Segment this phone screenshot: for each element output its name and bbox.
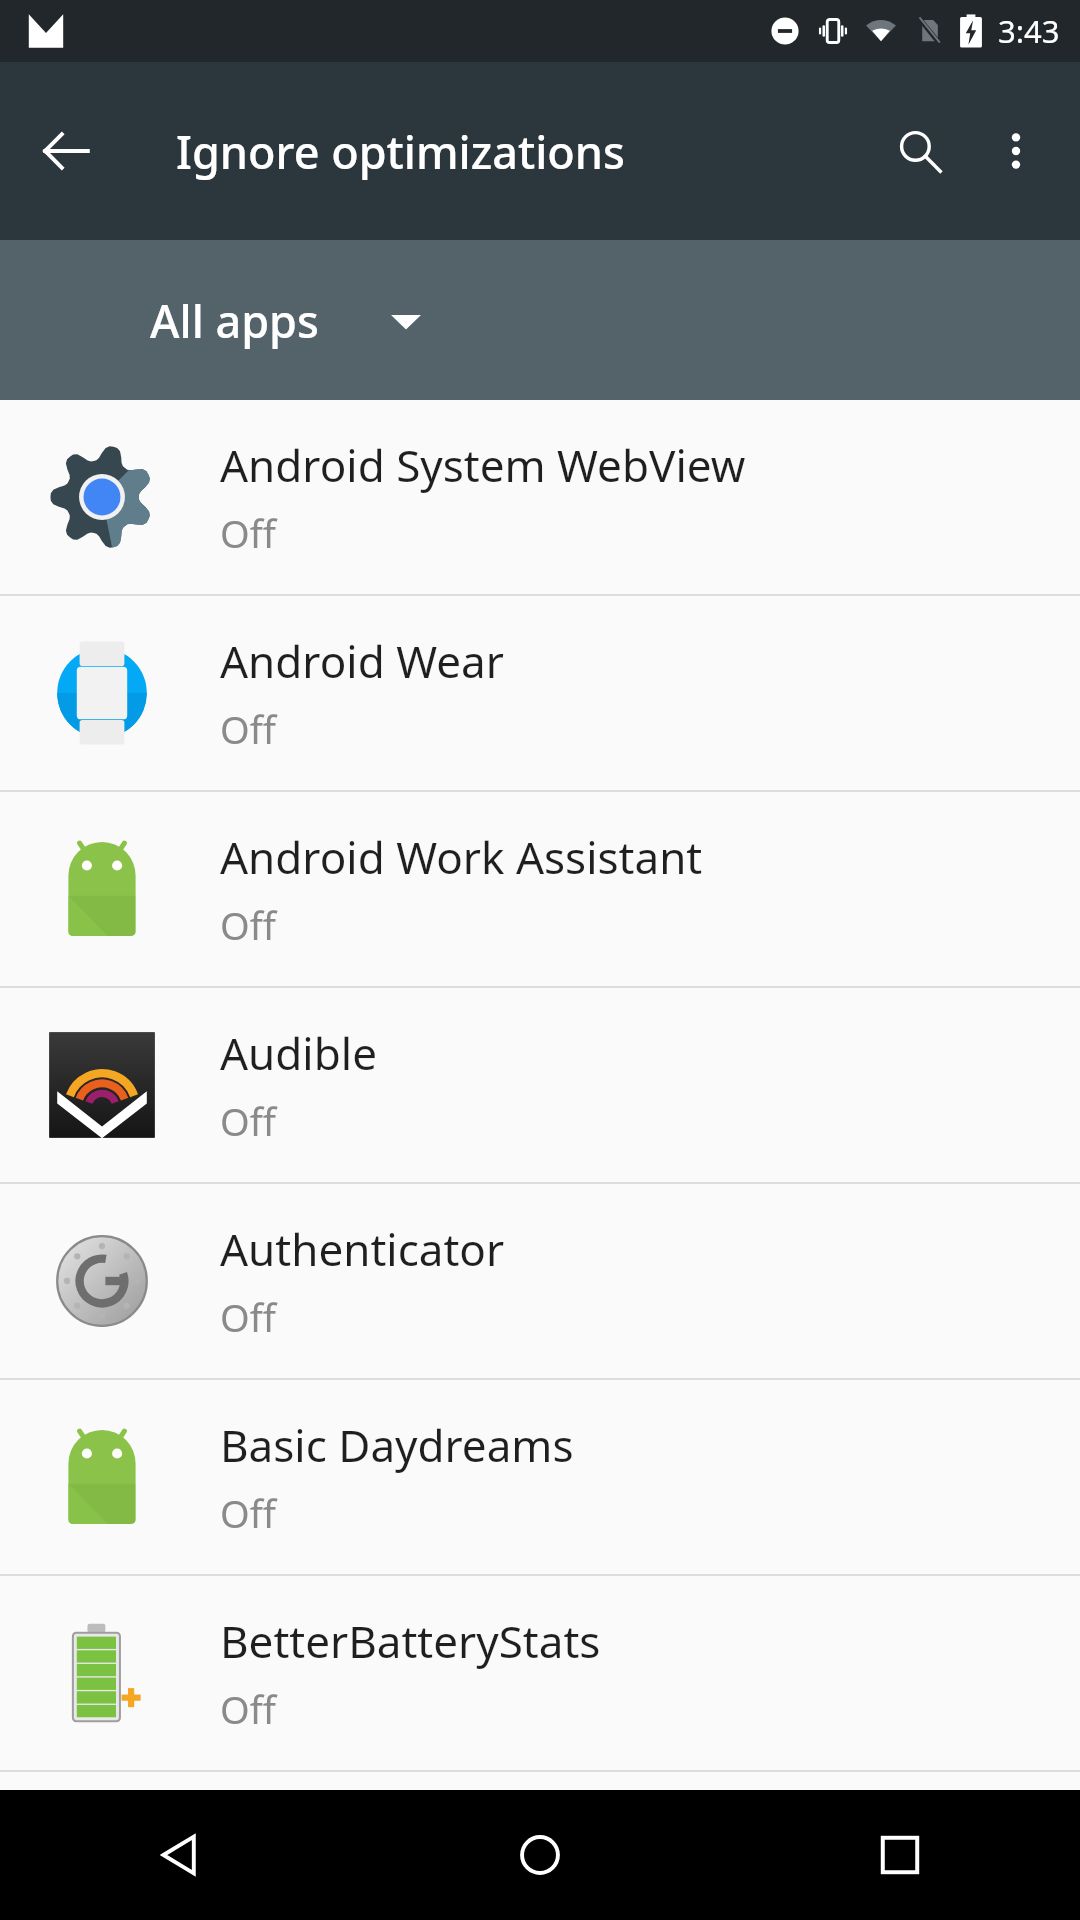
button[interactable]: Recent apps xyxy=(720,1790,1080,1920)
button[interactable]: Back xyxy=(0,1790,360,1920)
staticText: Android Work Assistant xyxy=(220,827,703,887)
staticText: Audible xyxy=(220,1023,377,1083)
button[interactable]: All apps xyxy=(150,290,421,351)
button[interactable]: Android Work Assistant xyxy=(0,792,1080,986)
button[interactable]: Navigate up xyxy=(18,103,114,199)
staticText: Authenticator xyxy=(220,1219,505,1279)
button[interactable]: Basic Daydreams xyxy=(0,1380,1080,1574)
button[interactable]: BetterBatteryStats xyxy=(0,1576,1080,1770)
staticText: Off xyxy=(220,507,276,559)
staticText: Off xyxy=(220,1683,276,1735)
button[interactable]: Android System WebView xyxy=(0,400,1080,594)
button[interactable]: Search xyxy=(872,103,968,199)
staticText: Off xyxy=(220,899,276,951)
staticText: Android Wear xyxy=(220,631,504,691)
staticText: Off xyxy=(220,1487,276,1539)
button[interactable]: Authenticator xyxy=(0,1184,1080,1378)
staticText: Basic Daydreams xyxy=(220,1415,574,1475)
staticText: Off xyxy=(220,703,276,755)
staticText: 3:43 xyxy=(998,10,1060,52)
button[interactable]: Audible xyxy=(0,988,1080,1182)
staticText: Ignore optimizations xyxy=(176,121,625,182)
staticText: Off xyxy=(220,1095,276,1147)
staticText: Android System WebView xyxy=(220,435,746,495)
staticText: Off xyxy=(220,1291,276,1343)
staticText: BetterBatteryStats xyxy=(220,1611,601,1671)
button[interactable]: Home xyxy=(360,1790,720,1920)
button[interactable]: More options xyxy=(968,103,1064,199)
staticText: All apps xyxy=(150,290,319,351)
button[interactable]: Android Wear xyxy=(0,596,1080,790)
